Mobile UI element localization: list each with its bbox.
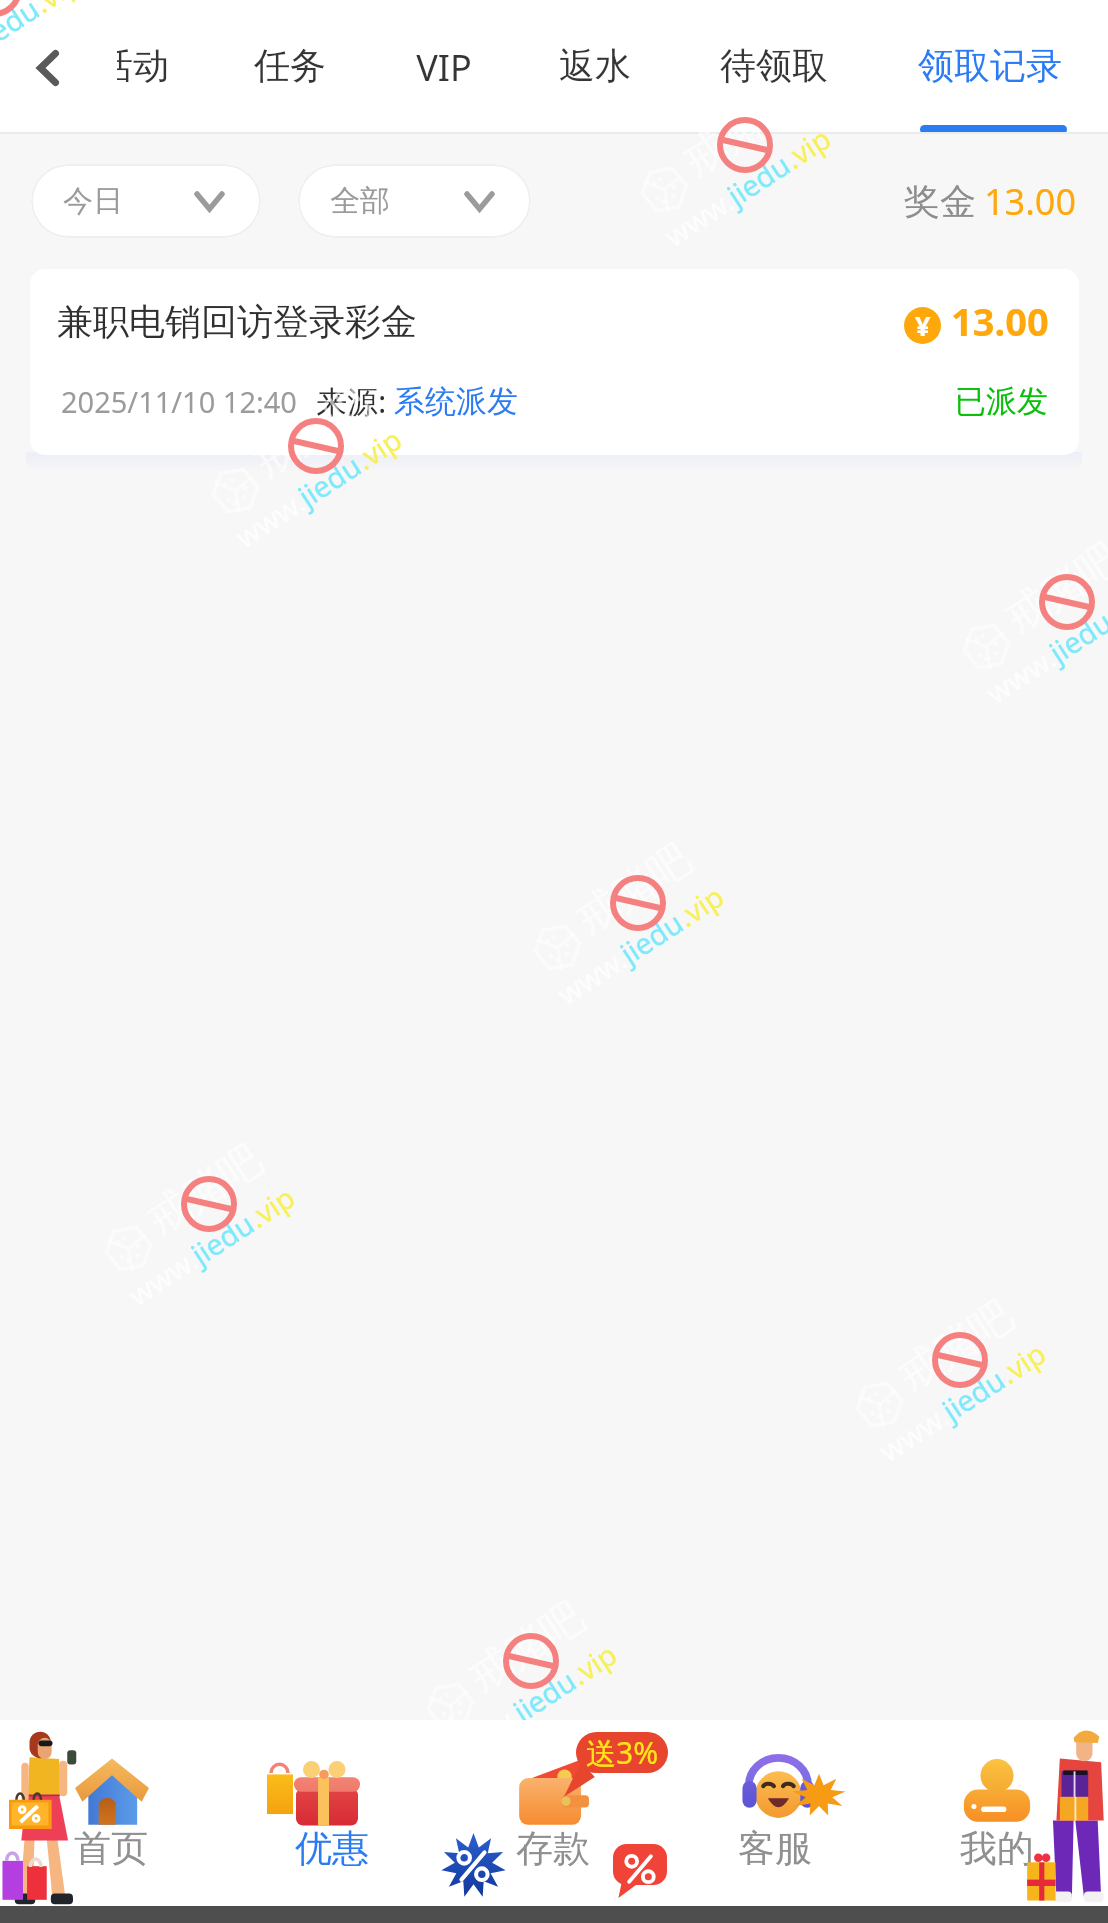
- staticText: 全部: [330, 182, 390, 220]
- staticText: jiedu: [612, 902, 691, 972]
- staticText: www.: [549, 939, 633, 1013]
- button[interactable]: 客服: [664, 1720, 886, 1906]
- button[interactable]: 首页: [0, 1720, 221, 1906]
- staticText: jiedu: [934, 1359, 1013, 1429]
- staticText: jiedu: [290, 445, 369, 515]
- button[interactable]: 领取记录: [898, 0, 1082, 134]
- staticText: 戒赌吧: [0, 0, 57, 32]
- button[interactable]: 全部: [298, 164, 531, 238]
- button[interactable]: 活动: [117, 0, 179, 134]
- staticText: .vip: [776, 118, 838, 177]
- button[interactable]: 优惠: [221, 1720, 442, 1906]
- staticText: 系统派发: [394, 382, 518, 421]
- staticText: 我的: [960, 1825, 1034, 1872]
- staticText: 2025/11/10 12:40: [61, 382, 297, 421]
- staticText: 今日: [63, 182, 123, 220]
- staticText: 戒赌吧: [674, 75, 808, 188]
- staticText: 戒赌吧: [567, 833, 701, 946]
- staticText: .vip: [1098, 575, 1108, 634]
- button[interactable]: 今日: [31, 164, 261, 238]
- button[interactable]: 返水: [503, 0, 687, 134]
- staticText: www.: [978, 638, 1062, 712]
- staticText: 领取记录: [918, 43, 1062, 88]
- button[interactable]: 兼职电销回访登录彩金: [30, 269, 1079, 455]
- button[interactable]: Back: [0, 12, 94, 122]
- staticText: VIP: [416, 43, 472, 92]
- staticText: 13.00: [984, 177, 1077, 226]
- staticText: jiedu: [505, 1660, 584, 1730]
- staticText: jiedu: [0, 0, 47, 58]
- button[interactable]: 我的: [886, 1720, 1108, 1906]
- button[interactable]: 任务: [198, 0, 382, 134]
- staticText: 兼职电销回访登录彩金: [57, 299, 417, 344]
- staticText: www.: [871, 1396, 955, 1470]
- staticText: .vip: [562, 1634, 624, 1693]
- staticText: 戒赌吧: [996, 532, 1108, 645]
- staticText: .vip: [25, 0, 87, 21]
- staticText: 已派发: [955, 382, 1048, 421]
- staticText: .vip: [347, 419, 409, 478]
- staticText: 首页: [74, 1825, 148, 1872]
- staticText: 活动: [117, 43, 179, 88]
- staticText: 任务: [254, 43, 326, 88]
- staticText: 待领取: [720, 43, 828, 88]
- staticText: jiedu: [719, 144, 798, 214]
- staticText: 13.00: [951, 295, 1049, 347]
- staticText: 戒赌吧: [138, 1134, 272, 1247]
- staticText: .vip: [669, 876, 731, 935]
- staticText: 客服: [738, 1825, 812, 1872]
- staticText: www.: [120, 1240, 204, 1314]
- staticText: 来源:: [316, 380, 387, 422]
- staticText: ¥: [915, 307, 931, 344]
- staticText: www.: [227, 482, 311, 556]
- staticText: 返水: [559, 43, 631, 88]
- staticText: .vip: [240, 1177, 302, 1236]
- staticText: 戒赌吧: [889, 1290, 1023, 1403]
- staticText: 戒赌吧: [245, 376, 379, 489]
- button[interactable]: VIP: [352, 0, 536, 134]
- staticText: .vip: [991, 1333, 1053, 1392]
- staticText: 存款: [516, 1825, 590, 1872]
- staticText: 送3%: [586, 1732, 659, 1773]
- staticText: 戒赌吧: [31, 1892, 165, 1923]
- staticText: www.: [656, 181, 740, 255]
- button[interactable]: 存款: [442, 1720, 664, 1906]
- staticText: 戒赌吧: [460, 1591, 594, 1704]
- button[interactable]: 待领取: [682, 0, 866, 134]
- staticText: 奖金: [904, 179, 976, 224]
- staticText: 优惠: [295, 1825, 369, 1872]
- staticText: jiedu: [183, 1203, 262, 1273]
- staticText: jiedu: [1041, 601, 1108, 671]
- staticText: www.: [442, 1697, 526, 1771]
